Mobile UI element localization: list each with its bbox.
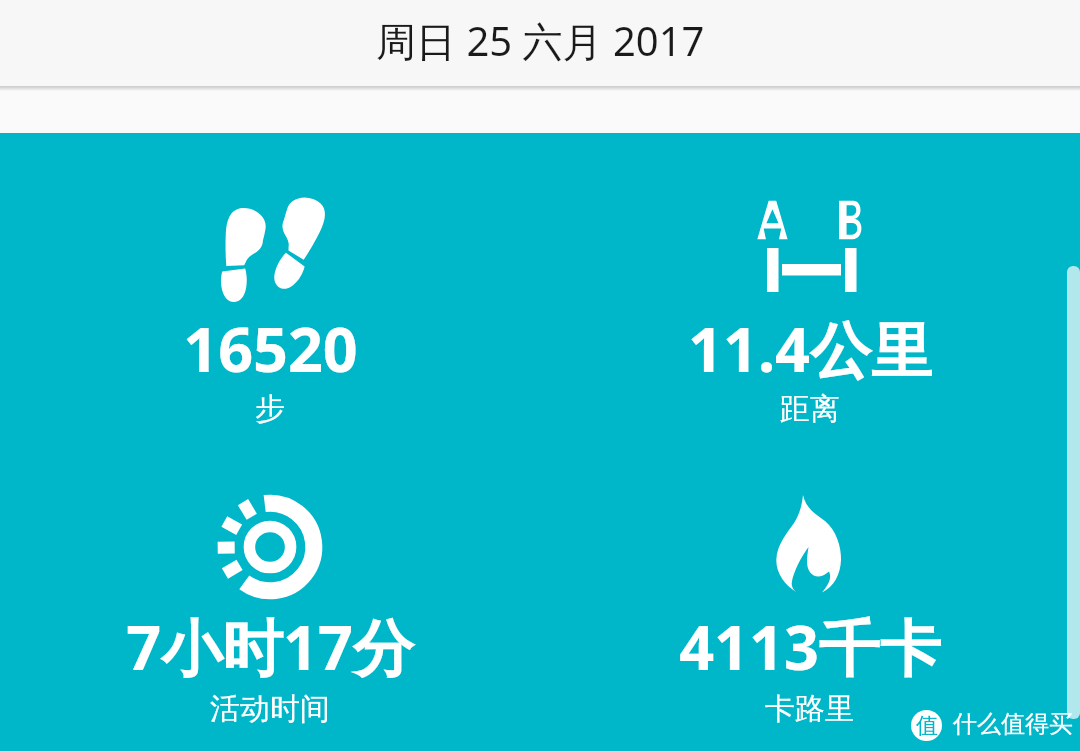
staticText: 什么值得买 bbox=[953, 709, 1073, 739]
staticText: 卡路里 bbox=[765, 690, 855, 728]
staticText: 周日 25 六月 2017 bbox=[376, 13, 705, 68]
staticText: 活动时间 bbox=[210, 690, 330, 728]
staticText: 4113千卡 bbox=[679, 605, 941, 688]
staticText: 16520 bbox=[183, 307, 358, 390]
staticText: 11.4公里 bbox=[688, 307, 932, 390]
button[interactable]: 步 bbox=[200, 179, 340, 319]
staticText: 步 bbox=[255, 390, 285, 428]
button[interactable]: 距离 bbox=[740, 176, 880, 316]
staticText: 7小时17分 bbox=[126, 605, 414, 688]
button[interactable]: 活动时间 bbox=[200, 477, 340, 617]
staticText: 距离 bbox=[780, 390, 840, 428]
staticText: 值 bbox=[916, 712, 938, 740]
button[interactable]: 周日 25 六月 2017 bbox=[0, 0, 1080, 86]
button[interactable]: 卡路里 bbox=[740, 475, 880, 615]
